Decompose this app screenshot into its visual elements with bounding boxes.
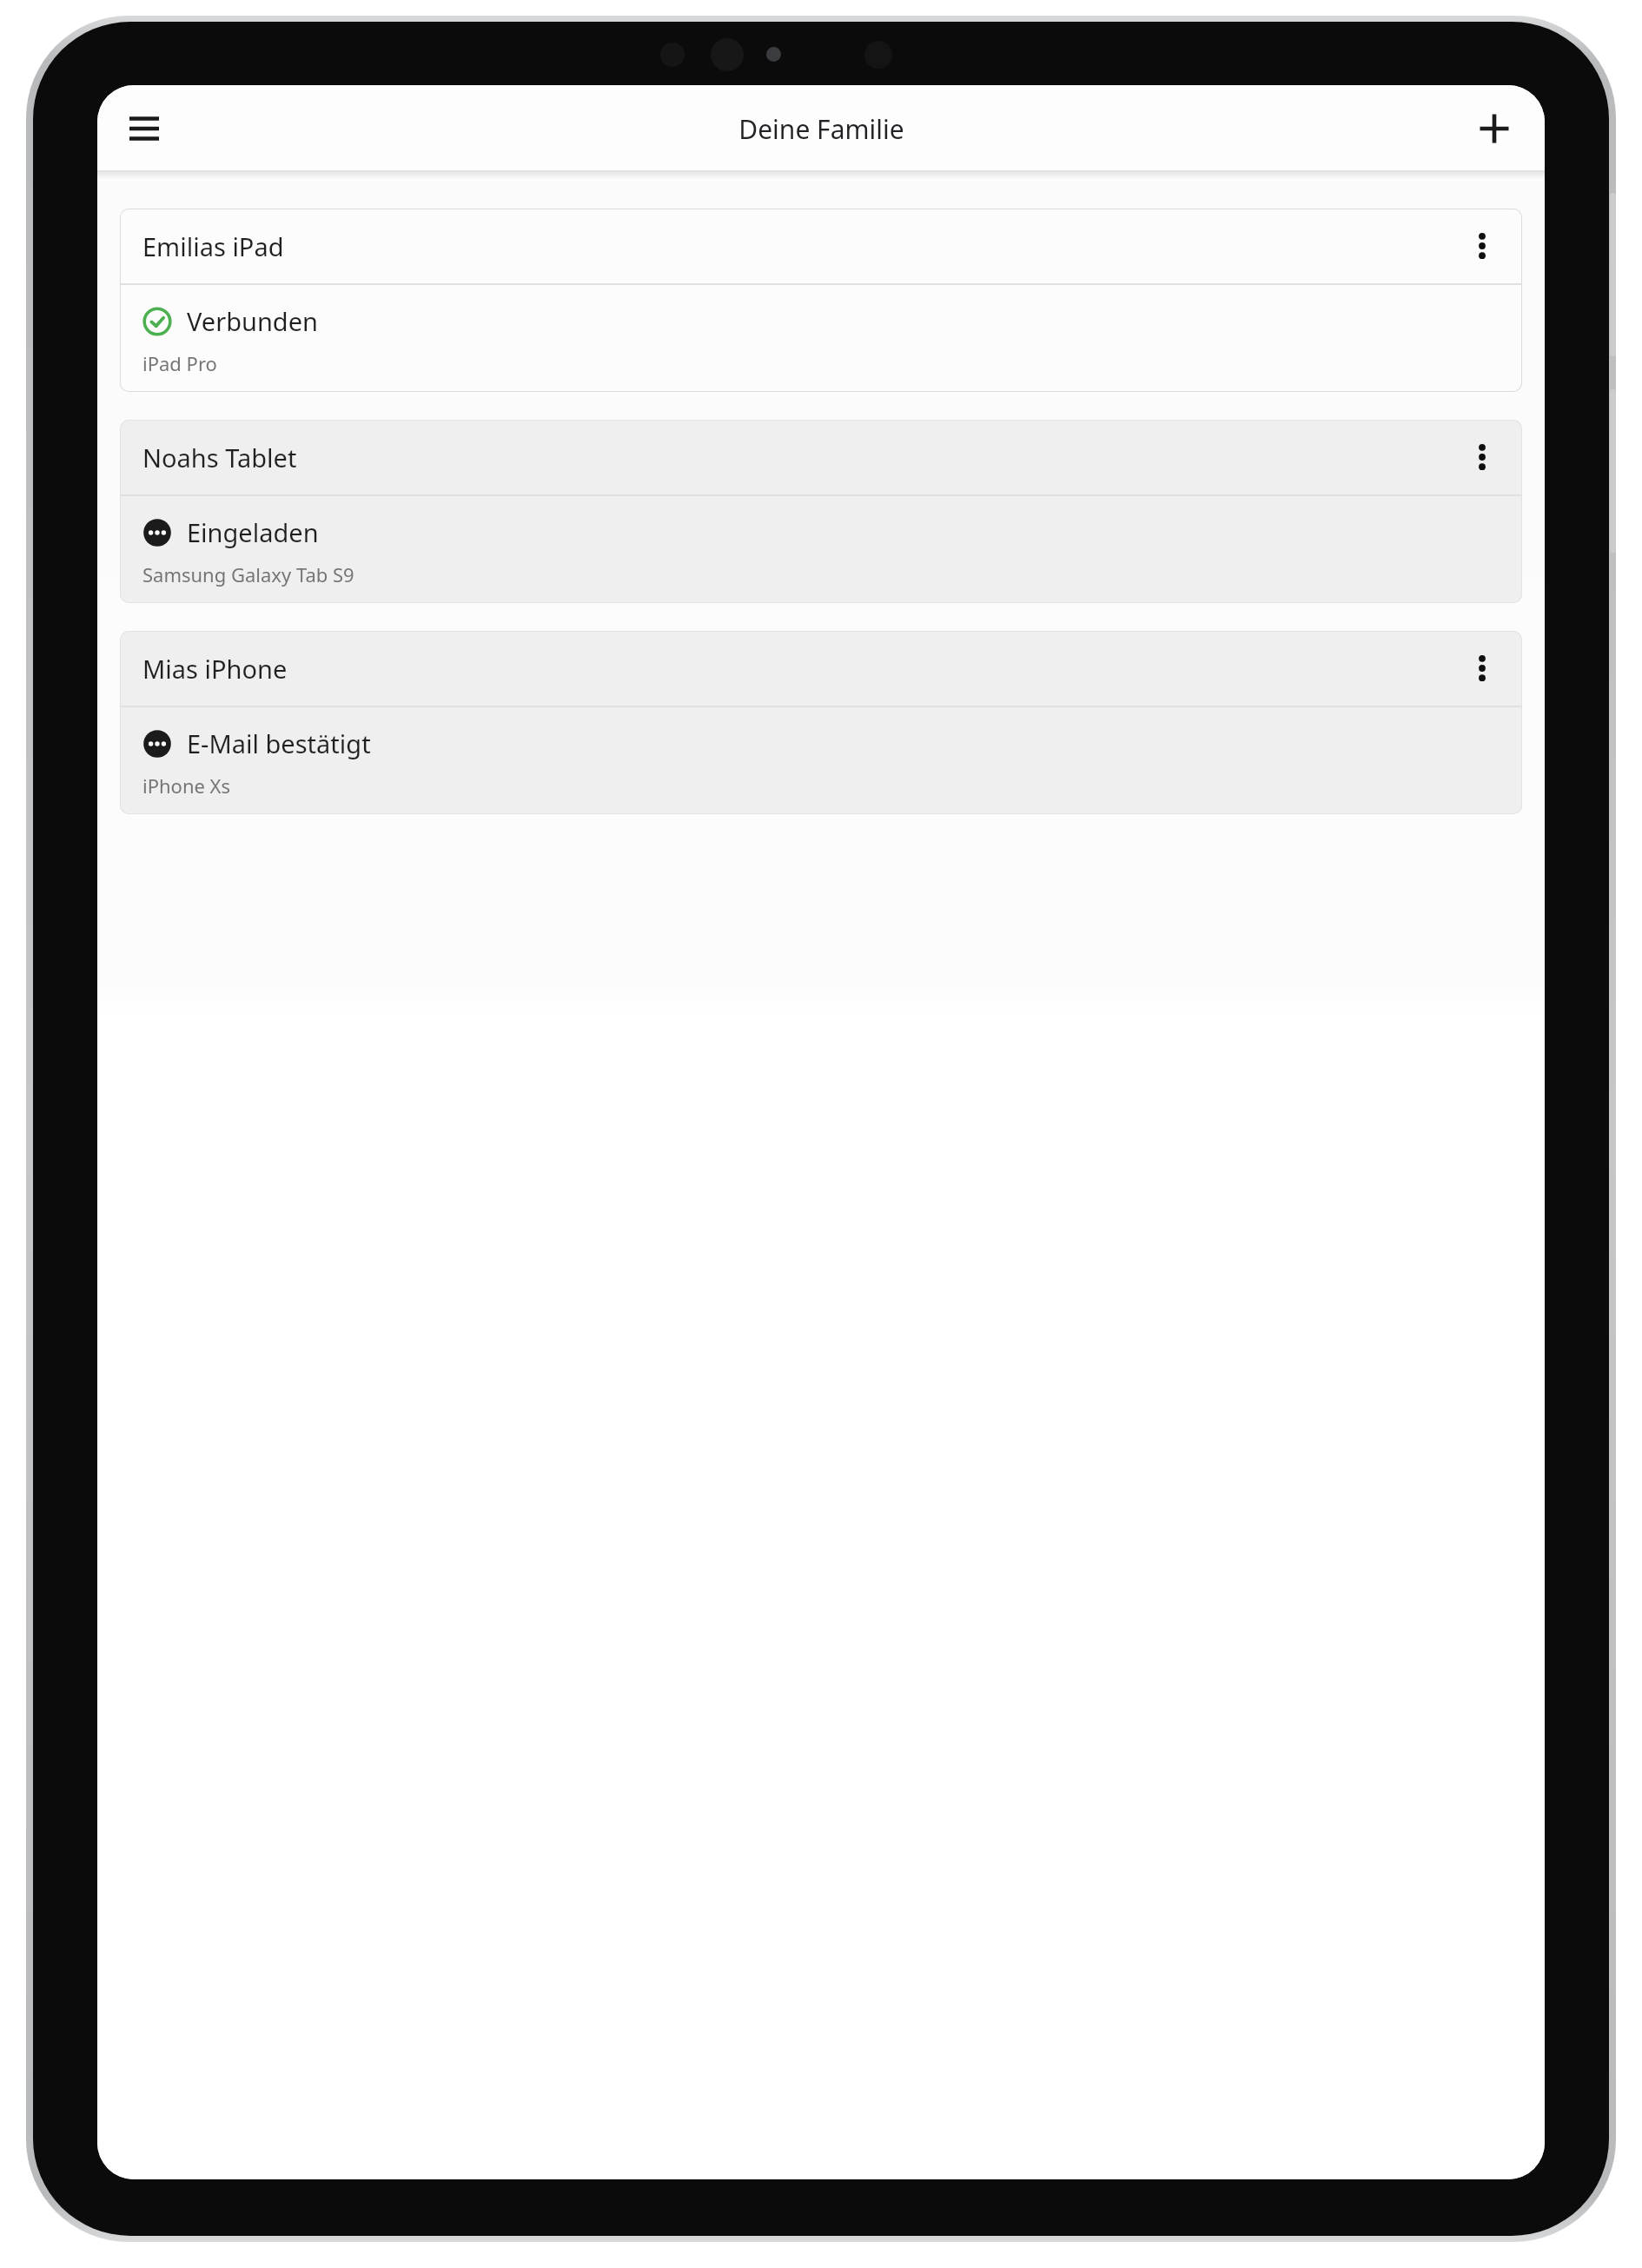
button[interactable]: Weitere Optionen <box>1449 635 1515 701</box>
button[interactable]: Menü <box>106 90 182 167</box>
staticText: iPad Pro <box>142 350 217 376</box>
staticText: Mias iPhone <box>142 652 288 686</box>
staticText: Emilias iPad <box>142 229 284 263</box>
staticText: E-Mail bestätigt <box>187 726 371 760</box>
button[interactable]: Emilias iPad <box>120 209 1522 392</box>
staticText: Eingeladen <box>187 515 319 549</box>
staticText: Samsung Galaxy Tab S9 <box>142 561 354 587</box>
button[interactable]: Noahs Tablet <box>120 420 1522 603</box>
button[interactable]: Weitere Optionen <box>1449 213 1515 279</box>
staticText: Deine Familie <box>738 111 904 147</box>
staticText: iPhone Xs <box>142 773 231 799</box>
staticText: Verbunden <box>187 304 318 338</box>
button[interactable]: Mias iPhone <box>120 631 1522 814</box>
button[interactable]: Weitere Optionen <box>1449 424 1515 490</box>
button[interactable]: Hinzufügen <box>1456 90 1533 167</box>
staticText: Noahs Tablet <box>142 441 297 474</box>
